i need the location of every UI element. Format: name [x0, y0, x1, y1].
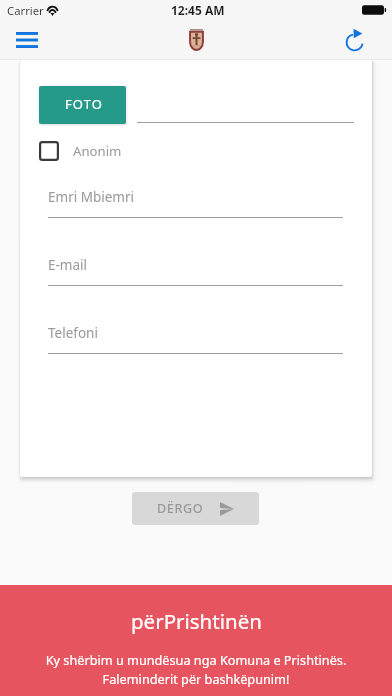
staticText: Ky shërbim u mundësua nga Komuna e Prish… [0, 651, 392, 688]
staticText: Anonim [73, 142, 122, 160]
button[interactable]: Anonim [39, 139, 122, 163]
button[interactable]: Telefoni [48, 324, 343, 354]
staticText: përPrishtinën [131, 607, 262, 635]
staticText: E-mail [48, 256, 88, 274]
staticText: Carrier [7, 3, 44, 18]
staticText: DËRGO [157, 500, 204, 517]
button[interactable]: E-mail [48, 256, 343, 286]
button[interactable]: Refresh [335, 20, 377, 60]
staticText: Telefoni [48, 324, 98, 342]
staticText: 12:45 AM [171, 2, 225, 18]
button[interactable]: FOTO [39, 86, 126, 124]
staticText: Emri Mbiemri [48, 188, 135, 206]
button[interactable]: Menu [4, 20, 50, 60]
button[interactable]: DËRGO [132, 492, 259, 525]
button[interactable]: Emri Mbiemri [48, 188, 343, 218]
staticText: FOTO [65, 95, 104, 113]
